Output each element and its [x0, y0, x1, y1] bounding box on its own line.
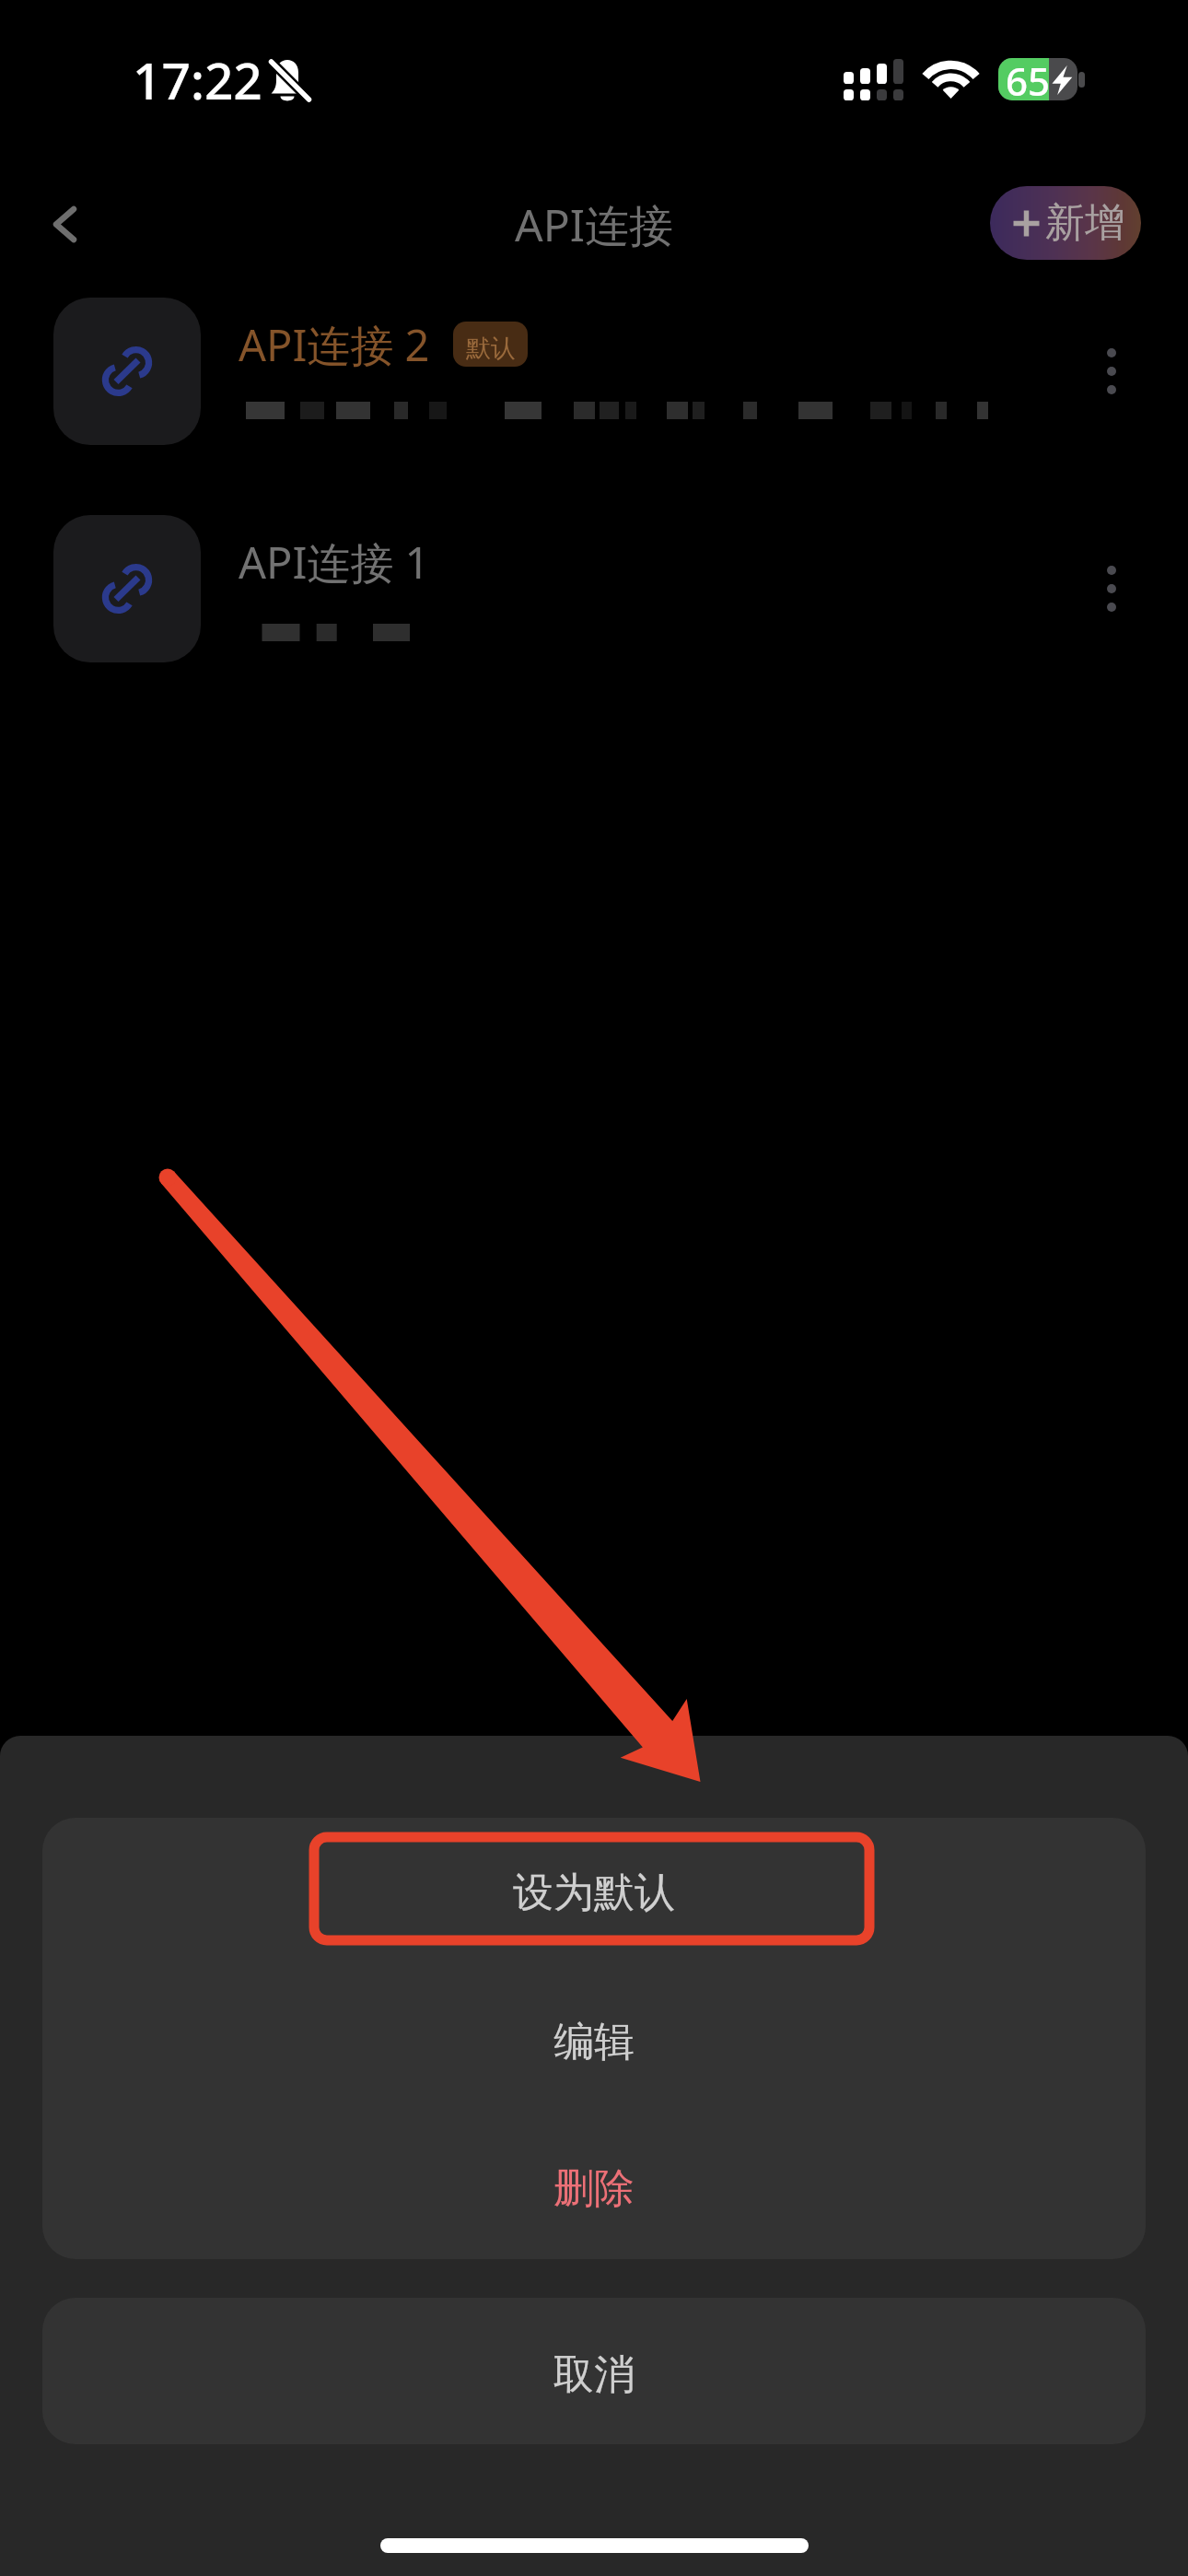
staticText: 默认 — [466, 333, 516, 364]
staticText: 新增 — [1045, 198, 1124, 248]
button[interactable]: Back — [13, 173, 114, 275]
button[interactable]: 删除 — [42, 2117, 1146, 2259]
staticText: 删除 — [553, 2163, 635, 2214]
staticText: API连接 — [515, 194, 673, 255]
button[interactable]: 取消 — [42, 2298, 1146, 2444]
button[interactable]: More options — [1067, 521, 1156, 610]
staticText: 取消 — [553, 2349, 635, 2400]
staticText: 17:22 — [133, 45, 262, 114]
button[interactable]: 新增 — [990, 186, 1141, 260]
staticText: API连接 1 — [239, 533, 430, 591]
staticText: 编辑 — [553, 2017, 635, 2067]
button[interactable]: API连接 1 — [0, 491, 1188, 686]
staticText: 设为默认 — [513, 1868, 675, 1918]
button[interactable]: 编辑 — [42, 1967, 1146, 2117]
button[interactable]: More options — [1067, 304, 1156, 392]
staticText: API连接 2 — [239, 315, 430, 374]
button[interactable]: 设为默认 — [42, 1818, 1146, 1967]
button[interactable]: API连接 2 — [0, 274, 1188, 469]
staticText: 65 — [1006, 58, 1051, 97]
